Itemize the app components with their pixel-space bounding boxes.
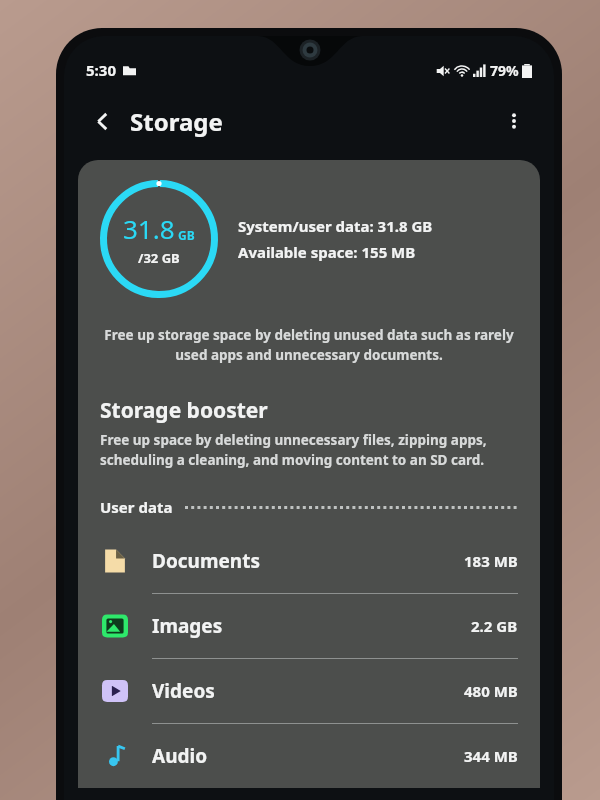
staticText: Documents	[152, 548, 260, 574]
staticText: 183 MB	[464, 551, 518, 571]
staticText: 344 MB	[464, 746, 518, 766]
staticText: Storage	[130, 105, 223, 138]
staticText: Free up storage space by deleting unused…	[98, 326, 520, 364]
staticText: 2.2 GB	[471, 616, 518, 636]
button[interactable]: Back	[82, 101, 122, 141]
button[interactable]: Audio	[78, 724, 540, 788]
staticText: /32 GB	[138, 249, 180, 267]
staticText: Available space: 155 MB	[238, 242, 416, 262]
staticText: Free up space by deleting unnecessary fi…	[100, 431, 518, 469]
button[interactable]: Storage booster	[78, 396, 540, 469]
staticText: 79%	[490, 61, 519, 80]
button[interactable]: Images	[78, 594, 540, 659]
button[interactable]: Videos	[78, 659, 540, 724]
staticText: 480 MB	[464, 681, 518, 701]
staticText: 31.8	[123, 211, 175, 246]
staticText: Audio	[152, 743, 208, 769]
button[interactable]: More options	[494, 101, 534, 141]
staticText: User data	[100, 497, 173, 517]
staticText: Images	[152, 613, 223, 639]
staticText: 5:30	[86, 60, 116, 80]
staticText: Storage booster	[100, 396, 268, 425]
staticText: System/user data: 31.8 GB	[238, 216, 433, 236]
staticText: Videos	[152, 678, 215, 704]
staticText: GB	[178, 227, 195, 243]
button[interactable]: Documents	[78, 529, 540, 594]
